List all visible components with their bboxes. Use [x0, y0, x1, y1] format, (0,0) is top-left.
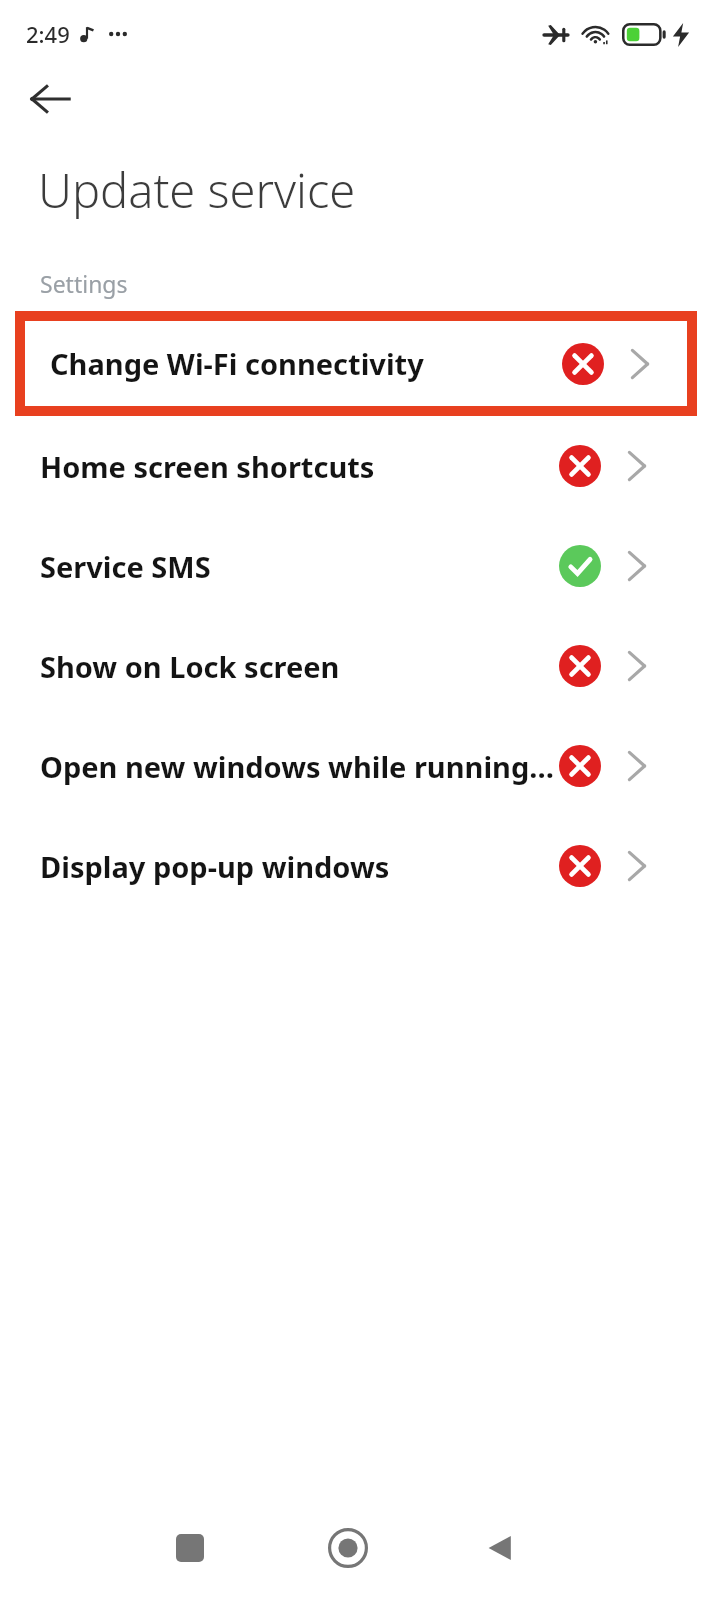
button[interactable]: Service SMS	[0, 516, 712, 616]
button[interactable]: Change Wi-Fi connectivity	[25, 321, 687, 406]
button[interactable]: Home screen shortcuts	[0, 416, 712, 516]
button[interactable]: Back	[460, 1508, 540, 1588]
staticText: Change Wi-Fi connectivity	[50, 344, 562, 383]
button[interactable]: Back	[30, 68, 86, 130]
button[interactable]: Home	[308, 1508, 388, 1588]
staticText: Update service	[38, 158, 356, 222]
staticText: 2:49	[26, 19, 70, 49]
staticText: Settings	[40, 268, 128, 299]
staticText: Service SMS	[40, 547, 559, 586]
staticText: Home screen shortcuts	[40, 447, 559, 486]
button[interactable]: Recents	[150, 1508, 230, 1588]
button[interactable]: Show on Lock screen	[0, 616, 712, 716]
button[interactable]: Open new windows while running i..	[0, 716, 712, 816]
button[interactable]: Display pop-up windows	[0, 816, 712, 916]
staticText: Open new windows while running i..	[40, 747, 559, 786]
staticText: Show on Lock screen	[40, 647, 559, 686]
staticText: Display pop-up windows	[40, 847, 559, 886]
